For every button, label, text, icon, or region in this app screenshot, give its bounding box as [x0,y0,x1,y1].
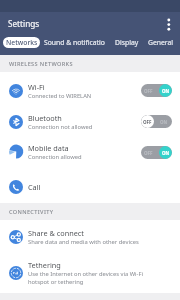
button[interactable]: Share & connect [0,220,180,253]
staticText: Connection not allowed [28,123,93,131]
staticText: ON [162,150,170,156]
button[interactable]: General [148,37,174,48]
staticText: Mobile data [28,143,69,153]
button[interactable]: Tethering [0,253,180,293]
staticText: ON [160,150,168,156]
staticText: OFF [144,88,153,94]
staticText: Use the Internet on other devices via Wi… [28,270,148,286]
button[interactable]: Wi-Fi [0,72,180,109]
button[interactable]: Toggle on [141,84,172,97]
staticText: Networks [6,38,38,47]
staticText: ON [160,119,168,125]
staticText: Connection allowed [28,153,82,161]
button[interactable]: Call [0,170,180,203]
button[interactable]: Sound & notificatio [44,37,105,48]
staticText: OFF [144,119,153,125]
staticText: ON [160,88,168,94]
button[interactable]: Bluetooth [0,109,180,134]
button[interactable]: Mobile data [0,134,180,170]
staticText: Share data and media with other devices [28,238,139,246]
staticText: Connected to WIRELAN [28,92,92,100]
button[interactable]: Networks [3,37,40,48]
staticText: Share & connect [28,228,84,238]
staticText: General [148,38,174,47]
staticText: WIRELESS NETWORKS [9,60,73,68]
staticText: CONNECTIVITY [9,208,54,216]
staticText: ON [162,88,170,94]
staticText: Settings [8,18,40,29]
staticText: Display [115,38,139,47]
staticText: OFF [144,150,153,156]
staticText: Wi-Fi [28,82,45,92]
staticText: Call [28,182,41,192]
staticText: Tethering [28,260,61,270]
button[interactable]: Display [115,37,139,48]
staticText: OFF [143,119,152,125]
button[interactable]: More options [159,15,179,35]
staticText: Sound & notificatio [44,38,105,47]
staticText: Bluetooth [28,113,62,123]
button[interactable]: Toggle off [141,115,172,128]
button[interactable]: Toggle on [141,146,172,159]
